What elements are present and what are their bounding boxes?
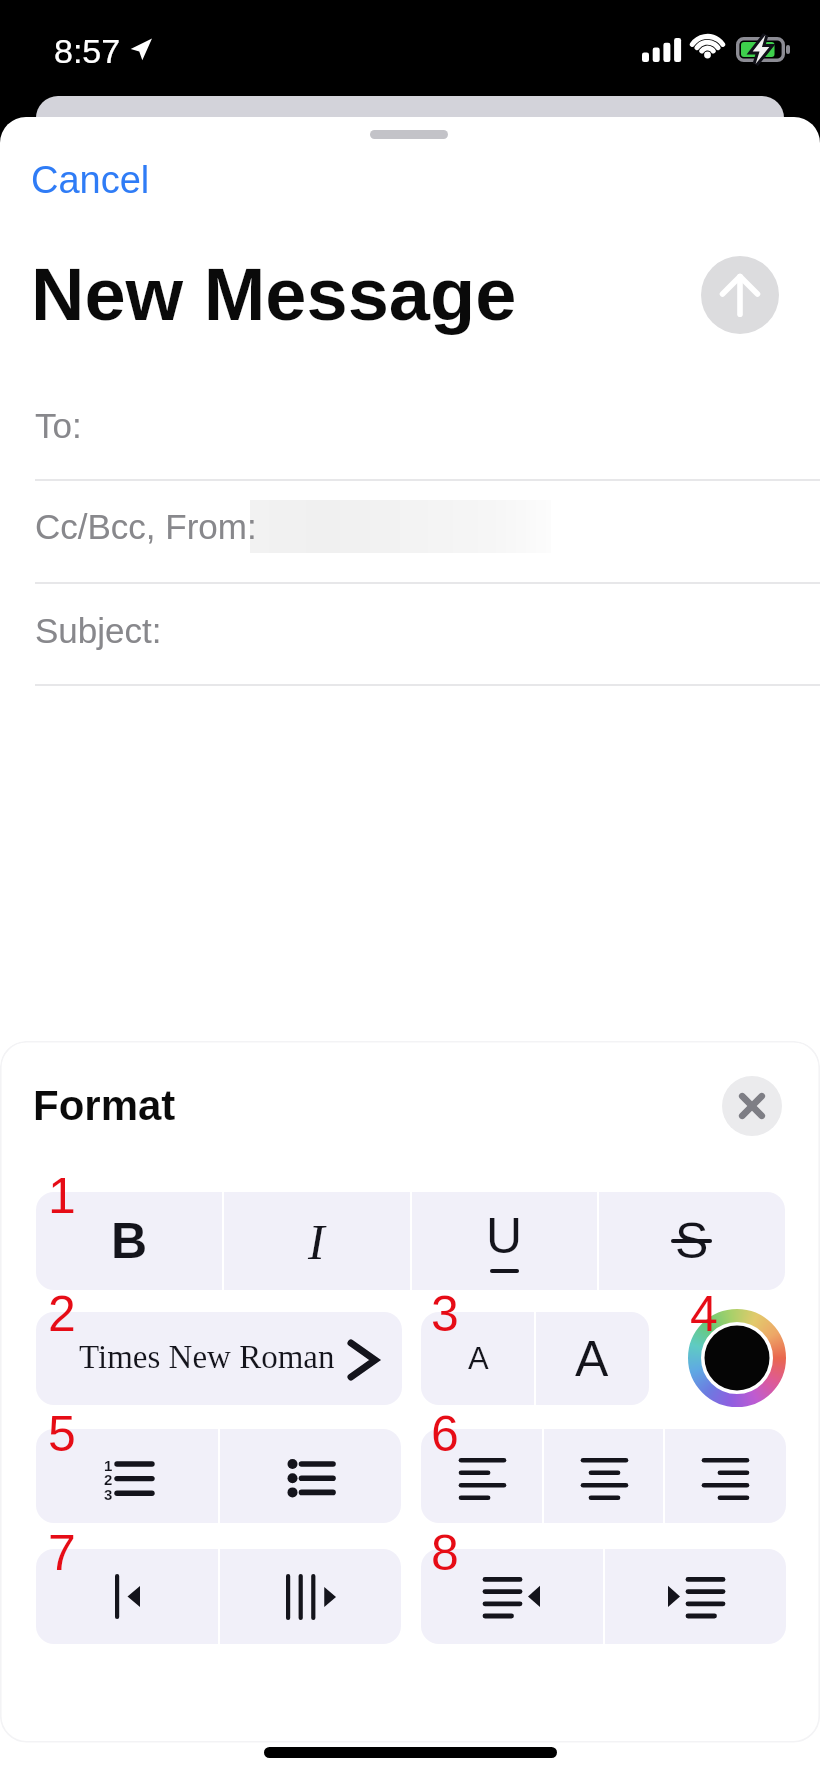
staticText: 1 [48, 1168, 76, 1224]
button[interactable]: Decrease font size [421, 1312, 535, 1405]
staticText: Subject: [35, 611, 162, 650]
staticText: B [111, 1213, 148, 1269]
button[interactable]: Numbered list [36, 1429, 219, 1523]
staticText: To: [35, 406, 82, 445]
button[interactable]: Underline [411, 1192, 598, 1290]
staticText: 8 [431, 1525, 459, 1581]
button[interactable]: Close [722, 1076, 782, 1136]
button[interactable]: Bulleted list [219, 1429, 401, 1523]
button[interactable]: Increase font size [535, 1312, 649, 1405]
button[interactable]: Align right [664, 1429, 786, 1523]
staticText: Times New Roman [79, 1339, 335, 1376]
button[interactable]: Text colour [688, 1309, 786, 1407]
staticText: A [468, 1341, 489, 1376]
staticText: Format [33, 1082, 176, 1129]
button[interactable]: Bold [36, 1192, 223, 1290]
button[interactable]: Outdent [421, 1549, 604, 1644]
staticText: Cancel [31, 159, 150, 201]
button[interactable]: Align centre [543, 1429, 665, 1523]
button[interactable]: Strikethrough [598, 1192, 785, 1290]
staticText: 2 [104, 1471, 113, 1488]
button[interactable]: Italic [223, 1192, 410, 1290]
button[interactable]: Times New Roman [36, 1312, 402, 1405]
button[interactable]: Right to left [219, 1549, 401, 1644]
button[interactable]: Indent [604, 1549, 786, 1644]
staticText: New Message [31, 253, 517, 336]
button[interactable]: Left to right [36, 1549, 219, 1644]
staticText: S [675, 1213, 709, 1269]
button[interactable]: Cancel [31, 159, 150, 201]
staticText: 7 [48, 1525, 76, 1581]
staticText: 2 [48, 1286, 76, 1342]
staticText: A [575, 1331, 609, 1387]
staticText: 4 [690, 1286, 718, 1342]
staticText: 1 [104, 1457, 113, 1474]
staticText: 6 [431, 1406, 459, 1462]
button[interactable]: Send [701, 256, 779, 334]
staticText: 5 [48, 1406, 76, 1462]
staticText: Cc/Bcc, From: [35, 507, 257, 546]
staticText: I [308, 1214, 325, 1269]
staticText: U [486, 1208, 523, 1264]
staticText: 3 [104, 1486, 113, 1503]
staticText: 3 [431, 1286, 459, 1342]
staticText: 8:57 [54, 32, 121, 70]
button[interactable]: Align left [421, 1429, 543, 1523]
